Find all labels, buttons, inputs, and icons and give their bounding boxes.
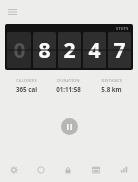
button[interactable]: Pause workout	[61, 118, 78, 135]
button[interactable]: STEPS	[5, 24, 133, 70]
button[interactable]: Activity	[27, 160, 54, 180]
staticText: 365 cal	[16, 85, 37, 93]
button[interactable]: DISTANCE	[90, 78, 133, 93]
staticText: 0	[13, 36, 26, 65]
staticText: 8	[38, 36, 51, 65]
staticText: STEPS	[116, 26, 129, 31]
button[interactable]: Statistics	[110, 160, 138, 180]
staticText: DURATION	[57, 78, 80, 83]
button[interactable]: Display	[82, 160, 110, 180]
button[interactable]: Lock	[54, 160, 82, 180]
button[interactable]: Settings	[0, 160, 27, 180]
staticText: DISTANCE	[101, 78, 123, 83]
staticText: 7	[113, 36, 126, 65]
staticText: CALORIES	[16, 78, 37, 83]
staticText: 5.8 km	[101, 85, 122, 93]
staticText: 01:11:58	[56, 85, 81, 93]
staticText: 4	[88, 36, 101, 65]
button[interactable]: CALORIES	[5, 78, 47, 93]
button[interactable]: Menu	[5, 5, 19, 19]
button[interactable]: DURATION	[47, 78, 90, 93]
staticText: 2	[63, 36, 76, 65]
